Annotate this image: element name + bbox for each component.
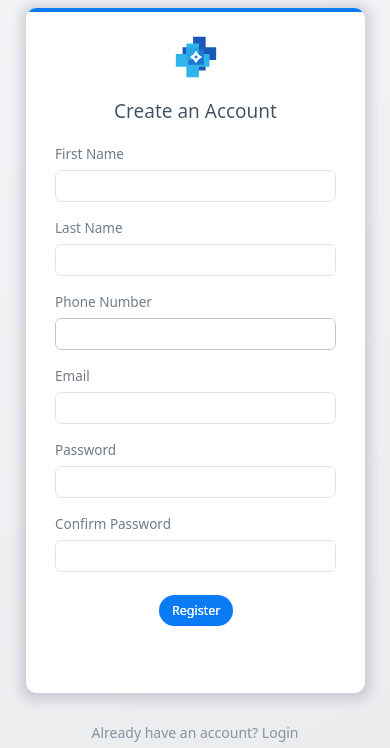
staticText: Last Name: [55, 219, 123, 237]
button[interactable]: [55, 244, 336, 276]
button[interactable]: [55, 466, 336, 498]
staticText: Create an Account: [114, 98, 277, 124]
staticText: Already have an account? Login: [91, 723, 299, 742]
button[interactable]: Register: [159, 595, 233, 626]
other: App logo: [175, 36, 217, 78]
staticText: First Name: [55, 145, 124, 163]
button[interactable]: [55, 540, 336, 572]
button[interactable]: [55, 170, 336, 202]
button[interactable]: [55, 392, 336, 424]
staticText: Phone Number: [55, 293, 152, 311]
button[interactable]: Already have an account? Login: [91, 723, 299, 742]
staticText: Email: [55, 367, 90, 385]
button[interactable]: [55, 318, 336, 350]
staticText: Confirm Password: [55, 515, 171, 533]
staticText: Register: [172, 602, 221, 619]
staticText: Password: [55, 441, 117, 459]
